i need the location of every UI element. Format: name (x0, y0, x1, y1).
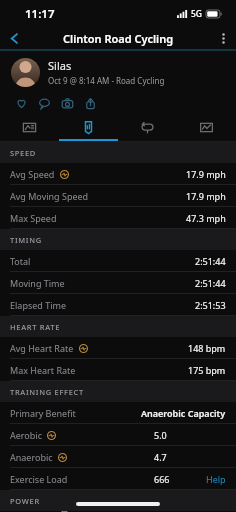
staticText: 2:51:44 (195, 255, 226, 267)
button[interactable]: Stats (59, 114, 118, 141)
staticText: 17.9 mph (186, 168, 226, 180)
staticText: 11:17 (25, 6, 55, 22)
button[interactable]: Aerobic (0, 424, 236, 445)
button[interactable]: Elapsed Time (0, 294, 236, 315)
staticText: 2:51:53 (195, 299, 226, 311)
staticText: 2:51:44 (195, 277, 226, 289)
button[interactable]: Avg Moving Speed (0, 185, 236, 206)
button[interactable]: Share (79, 93, 102, 114)
staticText: Oct 9 @ 8:14 AM - Road Cycling (48, 75, 165, 86)
button[interactable]: Exercise Load (0, 468, 236, 489)
staticText: POWER (10, 496, 40, 506)
staticText: 148 bpm (188, 342, 226, 354)
button[interactable]: Help (206, 473, 226, 485)
staticText: Primary Benefit (10, 407, 76, 419)
staticText: Help (206, 473, 226, 485)
button[interactable]: Laps (118, 114, 177, 141)
staticText: Avg Heart Rate (10, 342, 74, 354)
staticText: 666 (154, 473, 170, 485)
staticText: TRAINING EFFECT (10, 387, 84, 397)
button[interactable]: Splits (0, 114, 59, 141)
staticText: Anaerobic (10, 451, 53, 463)
button[interactable]: Avg Heart Rate (0, 337, 236, 358)
staticText: Max Speed (10, 212, 57, 224)
button[interactable]: Primary Benefit (0, 402, 236, 423)
staticText: Exercise Load (10, 473, 68, 485)
staticText: 47.3 mph (186, 212, 226, 224)
staticText: Total (10, 255, 31, 267)
staticText: Moving Time (10, 277, 65, 289)
button[interactable]: Moving Time (0, 272, 236, 293)
staticText: Aerobic (10, 429, 42, 441)
staticText: SPEED (10, 148, 37, 158)
staticText: Avg Speed (10, 168, 55, 180)
button[interactable]: Total (0, 250, 236, 271)
button[interactable]: Silas (0, 51, 236, 93)
button[interactable]: More options (210, 27, 236, 49)
button[interactable]: Comment (33, 93, 56, 114)
staticText: Max Heart Rate (10, 364, 76, 376)
button[interactable]: Charts (177, 114, 236, 141)
staticText: 5G (191, 8, 203, 20)
staticText: TIMING (10, 235, 42, 245)
staticText: Clinton Road Cycling (63, 31, 174, 46)
staticText: Elapsed Time (10, 299, 66, 311)
staticText: Anaerobic Capacity (141, 407, 226, 419)
button[interactable]: Avg Power (0, 511, 236, 512)
button[interactable]: Avg Speed (0, 163, 236, 184)
button[interactable]: Photos (56, 93, 79, 114)
staticText: Silas (48, 58, 72, 73)
button[interactable]: Like (10, 93, 33, 114)
staticText: Avg Moving Speed (10, 190, 89, 202)
button[interactable]: Anaerobic (0, 446, 236, 467)
staticText: 4.7 (154, 451, 167, 463)
staticText: 17.9 mph (186, 190, 226, 202)
staticText: HEART RATE (10, 322, 61, 332)
staticText: 175 bpm (188, 364, 226, 376)
button[interactable]: Max Speed (0, 207, 236, 228)
staticText: 5.0 (154, 429, 167, 441)
button[interactable]: Max Heart Rate (0, 359, 236, 380)
button[interactable]: Back (0, 27, 28, 49)
